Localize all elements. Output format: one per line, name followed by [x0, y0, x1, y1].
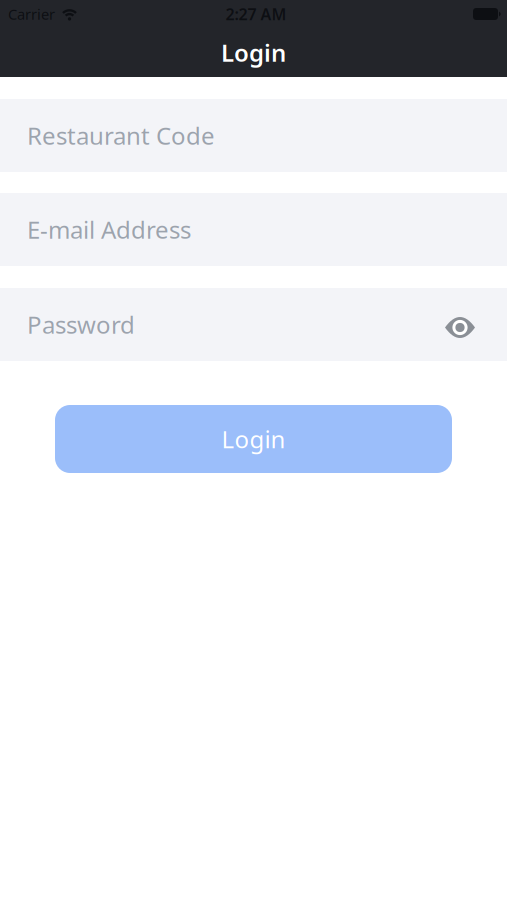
button[interactable]: E-mail Address — [0, 193, 507, 266]
button[interactable]: Restaurant Code — [0, 99, 507, 172]
staticText: 2:27 AM — [225, 3, 286, 25]
staticText: Password — [27, 309, 135, 340]
staticText: Login — [221, 423, 285, 455]
button[interactable]: Password — [0, 288, 507, 361]
staticText: Restaurant Code — [27, 120, 215, 151]
staticText: Carrier — [8, 4, 55, 24]
staticText: Login — [221, 37, 286, 68]
button[interactable]: Login — [55, 405, 452, 473]
staticText: E-mail Address — [27, 214, 191, 245]
